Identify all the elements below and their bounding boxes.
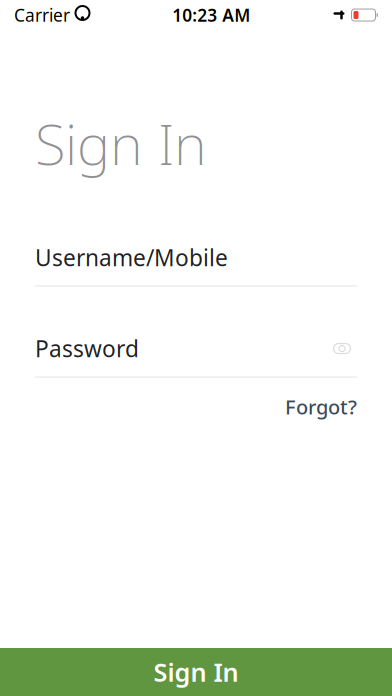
staticText: Carrier [14,3,70,26]
button[interactable]: Sign In [0,648,392,696]
staticText: Password [35,333,139,364]
button[interactable]: Show password [327,336,357,360]
button[interactable]: Forgot? [285,389,357,425]
staticText: Forgot? [285,394,357,420]
staticText: 10:23 AM [172,3,250,26]
staticText: Sign In [153,655,238,689]
staticText: Username/Mobile [35,242,228,272]
staticText: Sign In [35,106,207,180]
